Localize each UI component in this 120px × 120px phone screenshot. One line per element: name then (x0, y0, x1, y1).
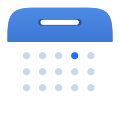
button[interactable]: Day (87, 84, 94, 91)
button[interactable]: Day (71, 84, 78, 91)
button[interactable]: Day (87, 52, 94, 59)
button[interactable]: Day (39, 68, 46, 75)
button[interactable]: Day (71, 52, 78, 59)
button[interactable]: Day (39, 84, 46, 91)
button[interactable]: Day (23, 84, 30, 91)
button[interactable]: Day (71, 68, 78, 75)
button[interactable]: Day (55, 52, 62, 59)
button[interactable]: Day (39, 52, 46, 59)
button[interactable]: Day (55, 68, 62, 75)
button[interactable]: Day (87, 68, 94, 75)
button[interactable]: Day (23, 68, 30, 75)
button[interactable]: Day (23, 52, 30, 59)
button[interactable]: Calendar month (7, 7, 112, 42)
button[interactable]: Day (55, 84, 62, 91)
